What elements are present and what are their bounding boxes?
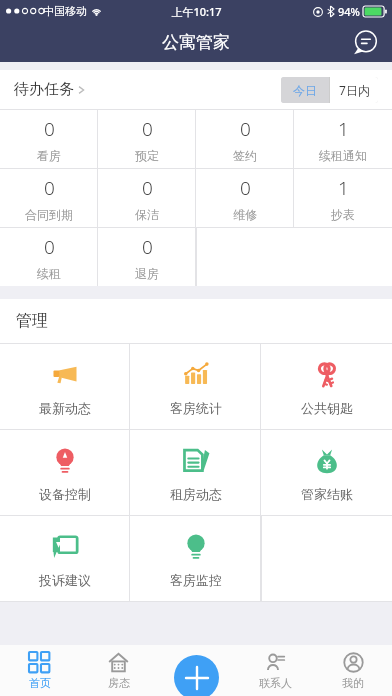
button[interactable]: 客房监控 — [130, 516, 261, 601]
button[interactable]: 7日内 — [330, 77, 378, 103]
staticText: 0 — [142, 175, 153, 201]
staticText: 合同到期 — [25, 207, 73, 222]
staticText: 0 — [44, 234, 55, 260]
button[interactable]: 管家结账 — [261, 430, 392, 515]
staticText: 联系人 — [259, 676, 292, 690]
staticText: 待办任务 — [14, 80, 74, 99]
staticText: 公共钥匙 — [301, 400, 353, 416]
staticText: 今日 — [293, 83, 317, 98]
staticText: 管理 — [16, 311, 48, 331]
button[interactable]: 0 — [0, 169, 98, 227]
staticText: 客房统计 — [170, 400, 222, 416]
button[interactable]: 房态 — [79, 646, 158, 696]
button[interactable]: 0 — [98, 169, 196, 227]
button[interactable]: 0 — [196, 169, 294, 227]
staticText: 0 — [44, 175, 55, 201]
button[interactable]: 我的 — [314, 646, 392, 696]
button[interactable]: 租房动态 — [130, 430, 261, 515]
button[interactable]: 公共钥匙 — [261, 344, 392, 429]
button[interactable]: 客房统计 — [130, 344, 261, 429]
staticText: 1 — [338, 116, 349, 142]
staticText: 0 — [240, 175, 251, 201]
staticText: 续租通知 — [319, 148, 367, 163]
button[interactable]: 联系人 — [236, 646, 314, 696]
button[interactable]: 0 — [0, 110, 98, 168]
staticText: 看房 — [37, 148, 61, 163]
staticText: 保洁 — [135, 207, 159, 222]
button[interactable]: 0 — [0, 228, 98, 286]
button[interactable]: 投诉建议 — [0, 516, 130, 601]
button[interactable]: 最新动态 — [0, 344, 130, 429]
staticText: 我的 — [342, 676, 364, 690]
staticText: 首页 — [29, 676, 51, 690]
button[interactable]: 1 — [294, 110, 392, 168]
staticText: 维修 — [233, 207, 257, 222]
staticText: 0 — [142, 234, 153, 260]
staticText: 中国移动 — [43, 4, 87, 18]
button[interactable]: 待办任务 — [14, 80, 85, 99]
staticText: 公寓管家 — [162, 32, 230, 53]
staticText: 94% — [338, 4, 360, 19]
button[interactable]: 0 — [98, 228, 196, 286]
button[interactable]: 首页 — [0, 646, 79, 696]
staticText: 上午10:17 — [171, 4, 222, 19]
staticText: 续租 — [37, 266, 61, 281]
staticText: 管家结账 — [301, 486, 353, 502]
staticText: 1 — [338, 175, 349, 201]
staticText: 最新动态 — [39, 400, 91, 416]
staticText: 抄表 — [331, 207, 355, 222]
staticText: 0 — [240, 116, 251, 142]
staticText: 0 — [142, 116, 153, 142]
staticText: 租房动态 — [170, 486, 222, 502]
staticText: 预定 — [135, 148, 159, 163]
staticText: 7日内 — [339, 82, 370, 98]
button[interactable]: Messages — [348, 25, 382, 59]
button[interactable]: 0 — [98, 110, 196, 168]
button[interactable]: Add — [174, 655, 219, 696]
staticText: 客房监控 — [170, 572, 222, 588]
staticText: 房态 — [108, 676, 130, 690]
staticText: 投诉建议 — [39, 572, 91, 588]
button[interactable]: 设备控制 — [0, 430, 130, 515]
button[interactable]: 今日 — [281, 77, 329, 103]
button[interactable]: 0 — [196, 110, 294, 168]
staticText: 退房 — [135, 266, 159, 281]
button[interactable]: 1 — [294, 169, 392, 227]
staticText: 签约 — [233, 148, 257, 163]
staticText: 0 — [44, 116, 55, 142]
staticText: 设备控制 — [39, 486, 91, 502]
